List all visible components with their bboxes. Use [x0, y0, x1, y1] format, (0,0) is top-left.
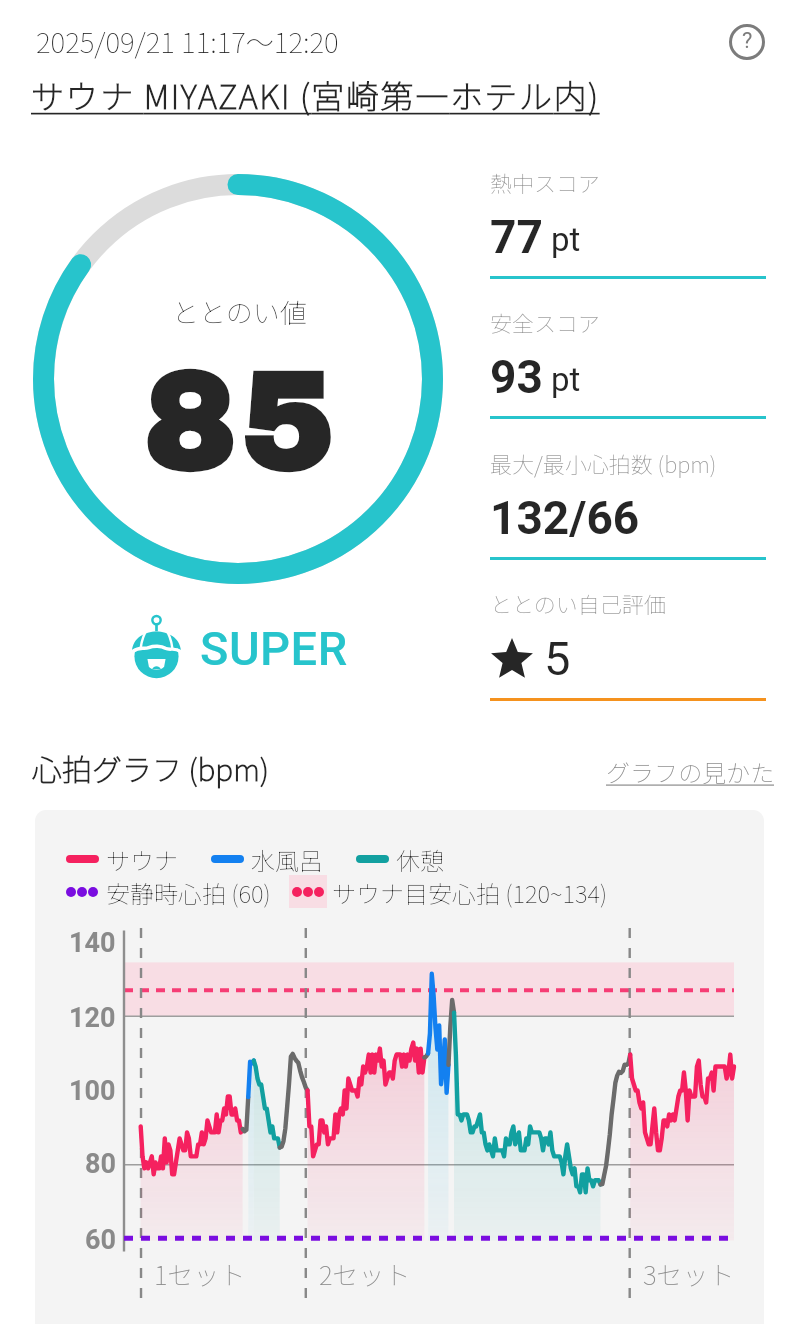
- staticText: ととのい自己評価: [490, 587, 666, 619]
- staticText: 80: [85, 1148, 116, 1180]
- button[interactable]: Help: [722, 17, 772, 67]
- staticText: 安静時心拍 (60): [106, 875, 271, 908]
- staticText: 100: [69, 1075, 116, 1107]
- staticText: 3セット: [643, 1255, 735, 1293]
- staticText: 132/66: [490, 491, 640, 545]
- button[interactable]: 安全スコア: [490, 306, 766, 419]
- staticText: 安全スコア: [490, 306, 601, 338]
- button[interactable]: サウナ MIYAZAKI (宮崎第一ホテル内): [31, 71, 600, 119]
- staticText: ととのい値: [172, 292, 307, 331]
- staticText: pt: [551, 220, 581, 259]
- button[interactable]: 最大/最小心拍数 (bpm): [490, 447, 766, 560]
- staticText: 水風呂: [251, 842, 323, 875]
- staticText: 心拍グラフ (bpm): [32, 746, 269, 789]
- staticText: 120: [69, 1002, 116, 1034]
- staticText: 85: [144, 346, 340, 497]
- staticText: 1セット: [154, 1255, 246, 1293]
- button[interactable]: グラフの見かた: [606, 754, 774, 789]
- button[interactable]: 熱中スコア: [490, 166, 766, 279]
- staticText: 熱中スコア: [490, 166, 601, 198]
- staticText: サウナ: [106, 842, 178, 875]
- staticText: ?: [742, 28, 753, 54]
- staticText: pt: [551, 360, 581, 399]
- staticText: 5: [544, 631, 571, 686]
- staticText: 93: [490, 350, 543, 404]
- staticText: 60: [85, 1224, 116, 1256]
- staticText: 最大/最小心拍数 (bpm): [490, 447, 717, 479]
- staticText: サウナ目安心拍 (120~134): [332, 875, 608, 908]
- staticText: 2セット: [319, 1255, 411, 1293]
- staticText: 77: [490, 210, 543, 264]
- staticText: 140: [69, 927, 116, 959]
- button[interactable]: SUPER: [128, 608, 348, 684]
- button[interactable]: ととのい自己評価: [490, 587, 766, 701]
- staticText: 2025/09/21 11:17〜12:20: [36, 21, 339, 62]
- staticText: SUPER: [200, 621, 348, 676]
- staticText: 休憩: [396, 842, 444, 875]
